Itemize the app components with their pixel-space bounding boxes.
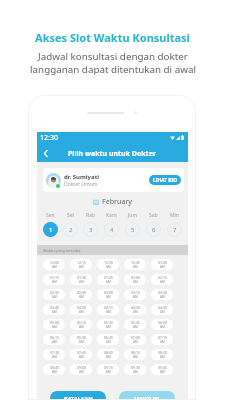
button[interactable]: 12:45 (124, 259, 146, 270)
staticText: AM (133, 370, 138, 374)
staticText: AM (106, 295, 111, 299)
staticText: 12:30 (104, 260, 113, 265)
staticText: Akses Slot Waktu Konsultasi (35, 30, 190, 45)
button[interactable]: 01:45 (97, 274, 119, 285)
button[interactable]: 07:15 (151, 334, 173, 345)
button[interactable]: MEMILIH (119, 391, 175, 400)
staticText: Sel (67, 212, 74, 219)
staticText: 02:15 (158, 275, 167, 280)
staticText: 06:45 (104, 335, 113, 340)
button[interactable]: 04:00 (70, 304, 92, 315)
staticText: AM (106, 325, 111, 329)
staticText: Rab (86, 212, 95, 219)
button[interactable]: 04:45 (151, 304, 173, 315)
button[interactable]: 01:00 (151, 259, 173, 270)
button[interactable]: 03:15 (124, 289, 146, 300)
button[interactable]: 6 (146, 222, 161, 237)
button[interactable]: 06:30 (70, 334, 92, 345)
staticText: AM (52, 340, 57, 344)
button[interactable]: 08:30 (151, 349, 173, 360)
button[interactable]: 01:30 (70, 274, 92, 285)
button[interactable]: 06:45 (97, 334, 119, 345)
staticText: 09:30 (131, 365, 140, 370)
button[interactable]: 03:30 (151, 289, 173, 300)
staticText: AM (160, 325, 165, 329)
button[interactable]: LIHAT BIO (149, 175, 181, 185)
staticText: Sab (149, 212, 158, 219)
staticText: 08:15 (131, 350, 140, 355)
staticText: 6 (152, 226, 156, 234)
staticText: 12:15 (77, 260, 86, 265)
staticText: AM (133, 355, 138, 359)
staticText: AM (160, 355, 165, 359)
staticText: AM (160, 370, 165, 374)
button[interactable]: 09:00 (70, 364, 92, 375)
button[interactable]: Back (39, 146, 53, 160)
button[interactable]: 09:45 (151, 364, 173, 375)
staticText: Pilih waktu untuk Dokter (68, 149, 156, 159)
button[interactable]: 02:00 (124, 274, 146, 285)
button[interactable]: 05:45 (124, 319, 146, 330)
staticText: 04:00 (77, 305, 86, 310)
staticText: 1 (49, 226, 53, 234)
button[interactable]: 06:15 (43, 334, 65, 345)
button[interactable]: 02:30 (43, 289, 65, 300)
button[interactable]: 07:30 (43, 349, 65, 360)
staticText: 06:00 (158, 320, 167, 325)
staticText: AM (79, 310, 84, 314)
button[interactable]: 05:00 (43, 319, 65, 330)
button[interactable]: 1 (43, 222, 58, 237)
button[interactable]: 08:15 (124, 349, 146, 360)
staticText: 2 (69, 226, 73, 234)
staticText: AM (52, 310, 57, 314)
staticText: 06:15 (50, 335, 59, 340)
staticText: AM (106, 280, 111, 284)
staticText: AM (52, 355, 57, 359)
staticText: 08:30 (158, 350, 167, 355)
button[interactable]: dr. Sumiyati (43, 168, 184, 192)
button[interactable]: 02:15 (151, 274, 173, 285)
staticText: Jum (128, 212, 138, 219)
staticText: AM (79, 280, 84, 284)
button[interactable]: 08:00 (97, 349, 119, 360)
staticText: Min (170, 212, 179, 219)
button[interactable]: 08:45 (43, 364, 65, 375)
staticText: 07:15 (158, 335, 167, 340)
button[interactable]: 05:30 (97, 319, 119, 330)
button[interactable]: BATALKAN (50, 391, 106, 400)
staticText: 09:15 (104, 365, 113, 370)
button[interactable]: 7 (167, 222, 182, 237)
staticText: 05:45 (131, 320, 140, 325)
button[interactable]: 5 (125, 222, 140, 237)
button[interactable]: 4 (104, 222, 119, 237)
button[interactable]: 04:15 (97, 304, 119, 315)
staticText: AM (52, 280, 57, 284)
button[interactable]: 09:15 (97, 364, 119, 375)
staticText: 4 (110, 226, 114, 234)
button[interactable]: 06:00 (151, 319, 173, 330)
button[interactable]: 03:00 (97, 289, 119, 300)
staticText: 05:00 (50, 320, 59, 325)
button[interactable]: 3 (83, 222, 98, 237)
button[interactable]: 09:30 (124, 364, 146, 375)
button[interactable]: 05:15 (70, 319, 92, 330)
staticText: AM (79, 325, 84, 329)
button[interactable]: 03:45 (43, 304, 65, 315)
staticText: 03:00 (104, 290, 113, 295)
staticText: AM (52, 265, 57, 269)
button[interactable]: 07:00 (124, 334, 146, 345)
button[interactable]: 07:45 (70, 349, 92, 360)
staticText: AM (160, 295, 165, 299)
button[interactable]: 04:30 (124, 304, 146, 315)
button[interactable]: 12:30 (97, 259, 119, 270)
button[interactable]: 2 (63, 222, 78, 237)
button[interactable]: 02:45 (70, 289, 92, 300)
staticText: AM (52, 325, 57, 329)
staticText: 07:00 (131, 335, 140, 340)
staticText: 04:30 (131, 305, 140, 310)
staticText: 08:00 (104, 350, 113, 355)
button[interactable]: 12:00 (43, 259, 65, 270)
button[interactable]: 01:15 (43, 274, 65, 285)
staticText: AM (79, 340, 84, 344)
button[interactable]: 12:15 (70, 259, 92, 270)
